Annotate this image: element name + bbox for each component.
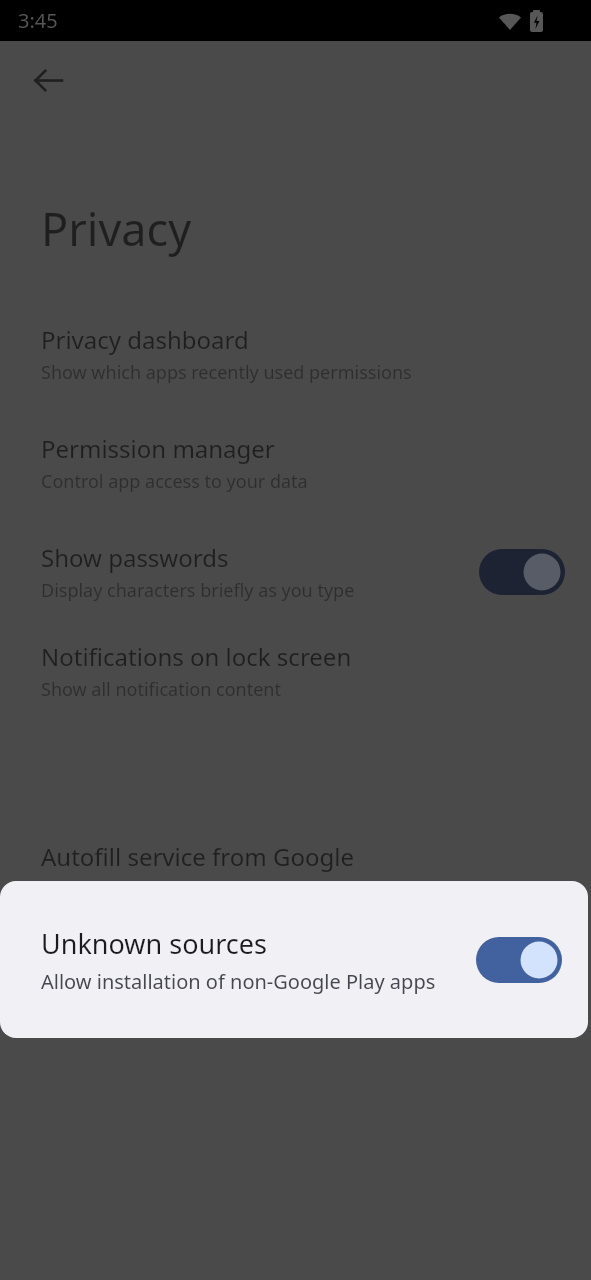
staticText: Notifications on lock screen <box>41 640 352 673</box>
staticText: Show passwords <box>41 541 229 574</box>
staticText: Show all notification content <box>41 677 281 702</box>
staticText: Unknown sources <box>41 925 267 962</box>
button[interactable]: Unknown sources <box>0 881 588 1038</box>
button[interactable]: Privacy dashboard <box>0 309 591 399</box>
button[interactable]: Permission manager <box>0 418 591 508</box>
button[interactable]: Back <box>22 54 74 106</box>
staticText: Show which apps recently used permission… <box>41 360 412 385</box>
staticText: 3:45 <box>18 7 58 34</box>
button[interactable]: Notifications on lock screen <box>0 626 591 716</box>
staticText: Permission manager <box>41 432 275 465</box>
button[interactable]: Autofill service from Google <box>0 826 591 916</box>
button[interactable]: Toggle Show passwords <box>477 546 567 598</box>
staticText: Control app access to your data <box>41 469 308 494</box>
button[interactable]: Show passwords <box>0 527 591 617</box>
staticText: Autofill service from Google <box>41 840 354 873</box>
staticText: Saved passwords, credit cards, addresses <box>41 877 389 902</box>
staticText: Privacy <box>41 198 192 259</box>
button[interactable]: Toggle Unknown sources <box>474 933 564 987</box>
staticText: Allow installation of non-Google Play ap… <box>41 968 436 995</box>
staticText: Privacy dashboard <box>41 323 249 356</box>
staticText: Display characters briefly as you type <box>41 578 355 603</box>
